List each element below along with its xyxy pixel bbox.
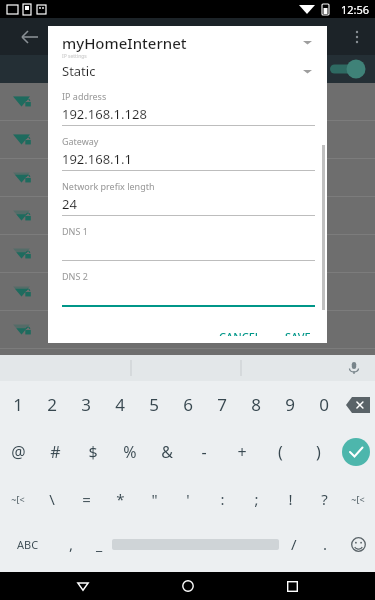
- staticText: ): [316, 441, 321, 463]
- button[interactable]: ~[<: [341, 475, 375, 522]
- button[interactable]: ~[<: [0, 475, 35, 522]
- staticText: (: [278, 441, 283, 463]
- staticText: +: [237, 441, 247, 463]
- button[interactable]: More options: [338, 18, 375, 55]
- button[interactable]: $: [74, 428, 111, 475]
- staticText: /: [291, 534, 297, 554]
- button[interactable]: _: [86, 522, 112, 566]
- staticText: @: [11, 441, 26, 463]
- button[interactable]: 5: [137, 381, 171, 428]
- staticText: IP settings: [62, 53, 87, 60]
- button[interactable]: [0, 159, 375, 196]
- button[interactable]: Delete: [341, 381, 375, 428]
- staticText: #: [50, 441, 61, 463]
- button[interactable]: %: [111, 428, 148, 475]
- button[interactable]: 4: [103, 381, 137, 428]
- button[interactable]: .: [309, 522, 341, 566]
- button[interactable]: Home: [166, 572, 210, 600]
- staticText: Gateway: [62, 135, 99, 147]
- button[interactable]: ,: [56, 522, 86, 566]
- staticText: 4: [115, 393, 125, 416]
- button[interactable]: Recent apps: [270, 572, 314, 600]
- staticText: 6: [183, 393, 193, 416]
- button[interactable]: =: [69, 475, 103, 522]
- button[interactable]: CANCEL: [209, 322, 271, 343]
- button[interactable]: (: [261, 428, 299, 475]
- button[interactable]: Back: [61, 572, 105, 600]
- button[interactable]: [0, 273, 375, 310]
- button[interactable]: /: [279, 522, 309, 566]
- button[interactable]: [0, 235, 375, 272]
- staticText: $: [88, 441, 98, 463]
- button[interactable]: -: [185, 428, 223, 475]
- staticText: ;: [254, 489, 259, 509]
- button[interactable]: 0: [307, 381, 341, 428]
- staticText: =: [82, 489, 91, 509]
- button[interactable]: Wi-Fi toggle: [327, 56, 367, 82]
- button[interactable]: Expand: [299, 34, 315, 50]
- button[interactable]: 2: [35, 381, 69, 428]
- button[interactable]: SAVE: [275, 322, 321, 343]
- button[interactable]: [0, 197, 375, 234]
- button[interactable]: 8: [239, 381, 273, 428]
- button[interactable]: ): [299, 428, 337, 475]
- button[interactable]: Back: [10, 18, 47, 55]
- button[interactable]: [0, 121, 375, 158]
- button[interactable]: Space: [112, 522, 279, 566]
- button[interactable]: !: [273, 475, 307, 522]
- staticText: Network prefix length: [62, 180, 155, 192]
- staticText: ": [151, 489, 158, 509]
- staticText: 192.168.1.1: [62, 150, 132, 168]
- staticText: 12:56: [341, 2, 370, 17]
- staticText: myHomeInternet: [62, 33, 187, 53]
- button[interactable]: HomeNet: [0, 349, 375, 386]
- staticText: 8: [251, 393, 261, 416]
- button[interactable]: 7: [205, 381, 239, 428]
- button[interactable]: :: [205, 475, 239, 522]
- staticText: _: [96, 535, 103, 554]
- button[interactable]: Emoji: [341, 522, 375, 566]
- button[interactable]: 1: [0, 381, 35, 428]
- button[interactable]: *: [103, 475, 137, 522]
- staticText: 5: [149, 393, 159, 416]
- staticText: SAVE: [285, 329, 311, 336]
- staticText: DNS 1: [62, 225, 88, 237]
- staticText: ': [186, 489, 190, 509]
- staticText: ,: [69, 534, 74, 554]
- button[interactable]: ': [171, 475, 205, 522]
- staticText: 7: [217, 393, 227, 416]
- button[interactable]: &: [148, 428, 185, 475]
- staticText: -: [201, 441, 207, 463]
- button[interactable]: @: [0, 428, 37, 475]
- staticText: 24: [62, 195, 77, 213]
- button[interactable]: [0, 387, 375, 424]
- staticText: ?: [321, 489, 328, 509]
- staticText: !: [288, 489, 293, 509]
- button[interactable]: ;: [239, 475, 273, 522]
- button[interactable]: \: [35, 475, 69, 522]
- staticText: 0: [319, 393, 329, 416]
- button[interactable]: ": [137, 475, 171, 522]
- button[interactable]: #: [37, 428, 74, 475]
- button[interactable]: 3: [69, 381, 103, 428]
- staticText: 1: [13, 393, 23, 416]
- staticText: :: [220, 489, 225, 509]
- staticText: 9: [285, 393, 295, 416]
- button[interactable]: [0, 83, 375, 120]
- button[interactable]: 6: [171, 381, 205, 428]
- button[interactable]: Voice input: [343, 357, 365, 379]
- button[interactable]: 9: [273, 381, 307, 428]
- button[interactable]: IP settings dropdown: [299, 63, 315, 79]
- button[interactable]: [0, 311, 375, 348]
- staticText: ~[<: [351, 493, 365, 505]
- button[interactable]: +: [223, 428, 261, 475]
- button[interactable]: ?: [307, 475, 341, 522]
- button[interactable]: ABC: [0, 522, 56, 566]
- button[interactable]: Enter: [337, 428, 375, 475]
